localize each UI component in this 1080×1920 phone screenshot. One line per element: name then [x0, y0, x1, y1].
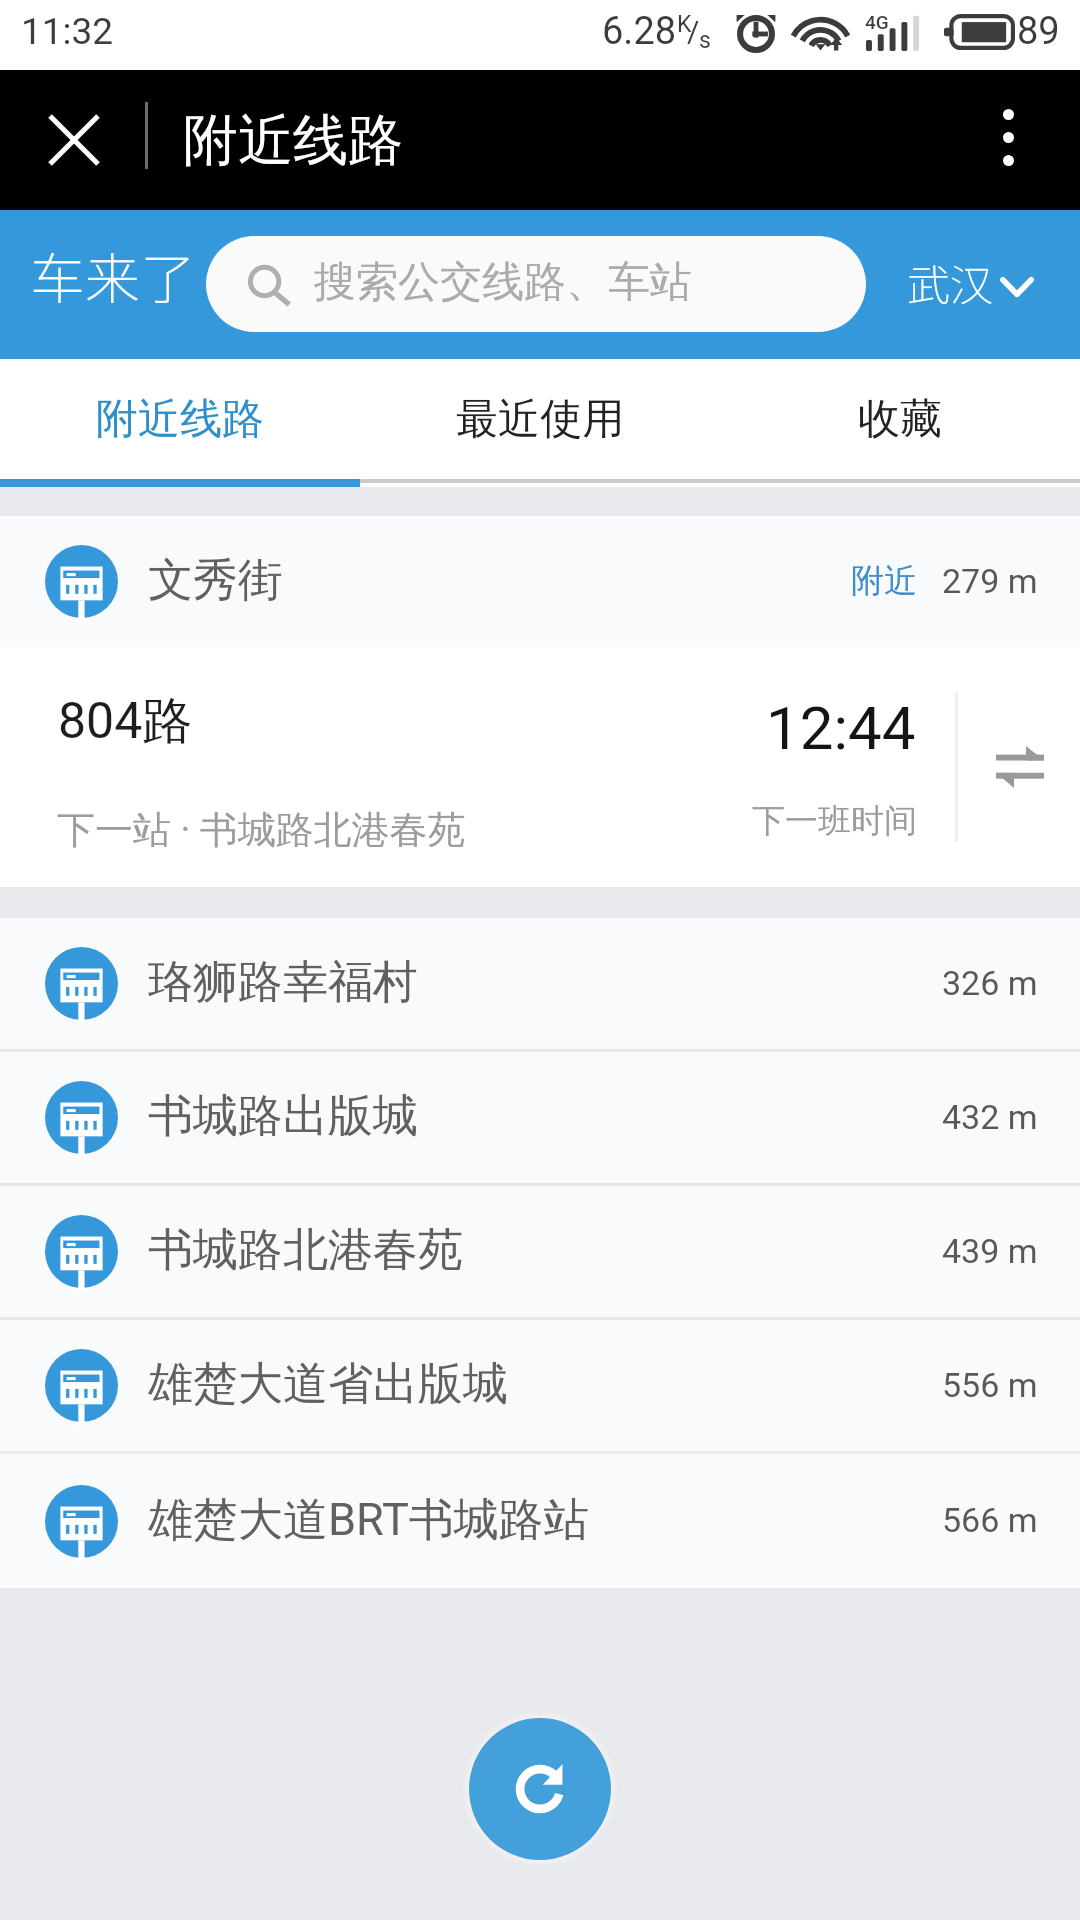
button[interactable]: 书城路出版城 — [0, 1052, 1080, 1183]
button[interactable]: Refresh — [469, 1718, 611, 1860]
button[interactable]: 珞狮路幸福村 — [0, 918, 1080, 1049]
staticText: 11:32 — [21, 10, 114, 53]
staticText: 326 m — [942, 963, 1038, 1003]
staticText: 566 m — [942, 1500, 1038, 1540]
staticText: 车来了 — [30, 235, 196, 315]
staticText: 89 — [1017, 9, 1060, 54]
button[interactable]: 书城路北港春苑 — [0, 1186, 1080, 1317]
staticText: 搜索公交线路、车站 — [314, 256, 692, 309]
staticText: 雄楚大道BRT书城路站 — [148, 1492, 589, 1549]
staticText: 书城路北港春苑 — [148, 1222, 463, 1279]
staticText: 4G — [865, 11, 889, 33]
staticText: 附近线路 — [183, 106, 403, 175]
staticText: 432 m — [942, 1097, 1038, 1137]
staticText: 收藏 — [858, 393, 942, 446]
staticText: 556 m — [942, 1365, 1038, 1405]
staticText: 6.28 — [602, 9, 677, 54]
staticText: 439 m — [942, 1231, 1038, 1271]
staticText: 下一站 · 书城路北港春苑 — [57, 806, 466, 854]
staticText: 最近使用 — [456, 393, 624, 446]
button[interactable]: 附近线路 — [0, 359, 360, 487]
staticText: 12:44 — [766, 693, 916, 763]
button[interactable]: More options — [960, 89, 1056, 185]
button[interactable] — [890, 230, 1060, 340]
staticText: 附近 — [851, 560, 917, 602]
staticText: 279 m — [942, 561, 1038, 601]
button[interactable]: 雄楚大道省出版城 — [0, 1320, 1080, 1451]
staticText: 书城路出版城 — [148, 1088, 418, 1145]
staticText: 附近线路 — [96, 393, 264, 446]
staticText: / — [687, 14, 700, 49]
button[interactable]: Close — [26, 92, 122, 188]
button[interactable]: Switch direction — [972, 719, 1068, 815]
button[interactable]: 文秀街 — [0, 516, 1080, 647]
staticText: 武汉 — [907, 251, 993, 313]
staticText: 雄楚大道省出版城 — [148, 1356, 508, 1413]
button[interactable]: 搜索公交线路、车站 — [206, 236, 866, 332]
staticText: K — [677, 11, 692, 38]
staticText: 珞狮路幸福村 — [148, 954, 418, 1011]
staticText: 下一班时间 — [752, 800, 917, 842]
staticText: s — [699, 27, 711, 54]
staticText: 804路 — [58, 690, 193, 753]
button[interactable]: 804路 — [0, 647, 1080, 887]
button[interactable]: 收藏 — [720, 359, 1080, 487]
staticText: 文秀街 — [148, 552, 283, 609]
button[interactable]: 最近使用 — [360, 359, 720, 487]
button[interactable]: 雄楚大道BRT书城路站 — [0, 1454, 1080, 1588]
